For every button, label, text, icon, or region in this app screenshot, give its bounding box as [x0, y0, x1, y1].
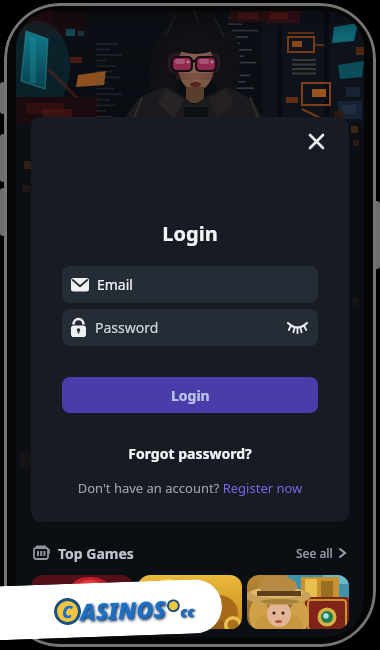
staticText: Password — [95, 318, 159, 337]
button[interactable] — [247, 575, 349, 629]
button[interactable]: Email — [62, 266, 318, 303]
button[interactable]: Forgot password? — [31, 444, 349, 463]
staticText: Top Games — [58, 544, 134, 563]
staticText: cc — [180, 601, 195, 621]
staticText: Email — [97, 275, 133, 294]
button[interactable]: Don't have an account? Register now — [31, 479, 349, 497]
button[interactable]: Login — [62, 377, 318, 413]
button[interactable]: Password — [62, 309, 318, 346]
button[interactable] — [138, 575, 242, 629]
button[interactable]: See all — [296, 545, 347, 561]
button[interactable] — [31, 575, 133, 629]
staticText: C — [62, 600, 73, 623]
staticText: Login — [31, 220, 349, 247]
button[interactable]: C — [0, 579, 223, 641]
staticText: ASINOS — [79, 593, 166, 627]
staticText: Login — [171, 386, 210, 405]
button[interactable] — [302, 127, 330, 155]
staticText: See all — [296, 545, 333, 561]
